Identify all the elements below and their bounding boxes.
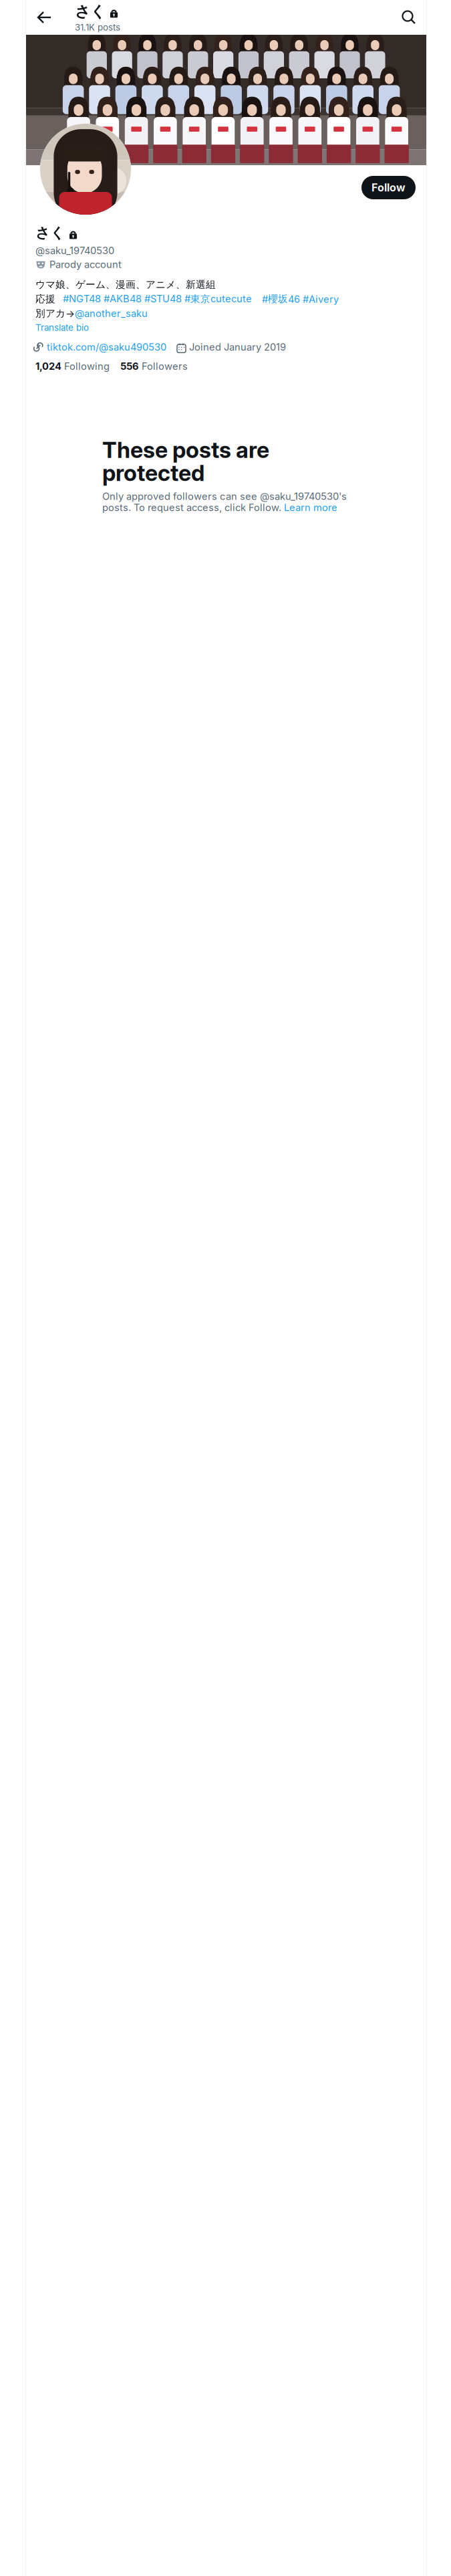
button[interactable]: Back: [26, 0, 63, 35]
staticText: Translate bio: [35, 322, 89, 333]
staticText: 31.1K posts: [75, 22, 120, 33]
button[interactable]: 556: [120, 360, 188, 372]
staticText: #NGT48 #AKB48 #STU48 #東京cutecute: [63, 293, 252, 305]
staticText: ウマ娘、ゲーム、漫画、アニメ、新選組: [35, 278, 216, 291]
button[interactable]: Learn more: [284, 501, 337, 513]
button[interactable]: 1,024: [35, 360, 110, 372]
staticText: protected: [102, 459, 204, 486]
staticText: posts. To request access, click Follow.: [102, 501, 284, 513]
staticText: Joined January 2019: [189, 341, 286, 353]
staticText: Only approved followers can see @saku_19…: [102, 490, 347, 502]
staticText: 1,024: [35, 360, 61, 372]
button[interactable]: Translate bio: [35, 322, 89, 333]
staticText: さく: [75, 2, 106, 21]
staticText: 556: [120, 360, 139, 372]
staticText: さく: [35, 224, 65, 242]
button[interactable]: Search: [392, 0, 426, 35]
staticText: @another_saku: [75, 307, 148, 319]
staticText: Followers: [142, 360, 188, 372]
staticText: Parody account: [49, 259, 122, 270]
button[interactable]: Follow: [361, 176, 416, 199]
staticText: #櫻坂46 #Aivery: [262, 293, 339, 305]
staticText: Following: [64, 360, 110, 372]
staticText: tiktok.com/@saku490530: [47, 341, 166, 353]
staticText: 応援: [35, 293, 55, 305]
button[interactable]: tiktok.com/@saku490530: [47, 341, 166, 353]
staticText: @saku_19740530: [35, 245, 114, 257]
staticText: Learn more: [284, 501, 337, 513]
staticText: 別アカ→: [35, 307, 75, 320]
staticText: Follow: [371, 181, 406, 194]
staticText: These posts are: [102, 436, 269, 463]
